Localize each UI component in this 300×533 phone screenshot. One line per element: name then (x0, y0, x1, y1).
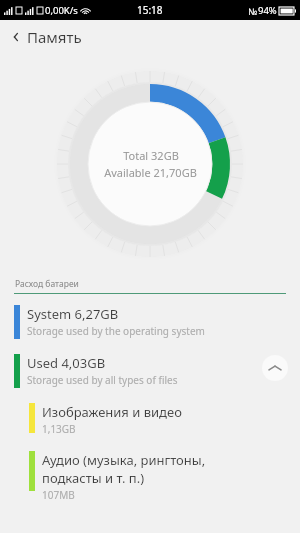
button[interactable]: Аудио (музыка, рингтоны, подкасты и т. п… (0, 440, 300, 506)
staticText: Used 4,03GB (27, 354, 106, 372)
staticText: Расход батареи (15, 278, 79, 290)
staticText: Изображения и видео (42, 403, 182, 421)
staticText: № (248, 5, 258, 17)
button[interactable]: Back (0, 20, 300, 54)
staticText: 0,00K/s (45, 4, 78, 17)
staticText: System 6,27GB (27, 305, 119, 323)
button[interactable]: Used 4,03GB (0, 343, 300, 392)
staticText: Total 32GB (123, 148, 179, 163)
staticText: Available 21,70GB (104, 165, 197, 180)
button[interactable]: System 6,27GB (0, 294, 300, 343)
button[interactable]: Изображения и видео (0, 392, 300, 440)
staticText: Storage used by the operating system (27, 324, 205, 338)
staticText: Storage used by all types of files (27, 373, 178, 387)
staticText: 107MB (42, 488, 75, 502)
staticText: 1,13GB (42, 422, 76, 436)
button[interactable]: Collapse (262, 355, 288, 381)
staticText: 94% (258, 4, 277, 17)
staticText: Память (27, 27, 82, 47)
staticText: Аудио (музыка, рингтоны, подкасты и т. п… (42, 451, 258, 487)
staticText: 15:18 (137, 3, 163, 17)
